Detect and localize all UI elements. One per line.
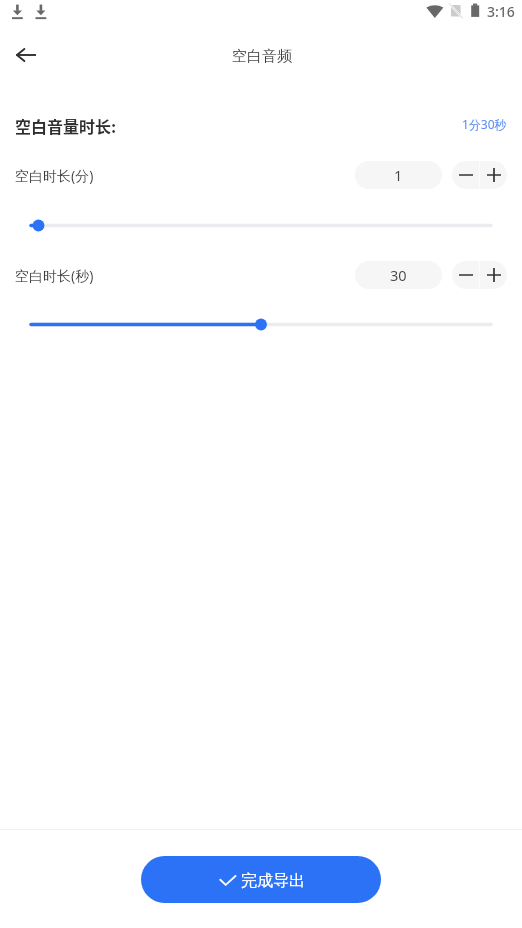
staticText: 空白音量时长: xyxy=(15,114,117,137)
staticText: 1分30秒 xyxy=(462,116,507,132)
staticText: 完成导出 xyxy=(241,871,305,891)
staticText: 30 xyxy=(390,265,407,285)
button[interactable]: Back xyxy=(0,29,52,81)
button[interactable]: 1 xyxy=(355,161,442,189)
button[interactable]: 30 xyxy=(355,261,442,289)
button[interactable]: Increase xyxy=(480,161,507,189)
button[interactable]: Decrease xyxy=(452,261,479,289)
button[interactable]: Decrease xyxy=(452,161,479,189)
button[interactable] xyxy=(31,215,491,236)
button[interactable]: Increase xyxy=(480,261,507,289)
staticText: 空白时长(秒) xyxy=(15,266,94,285)
staticText: 空白时长(分) xyxy=(15,166,94,185)
staticText: 1 xyxy=(394,165,403,185)
button[interactable] xyxy=(31,314,491,335)
staticText: 3:16 xyxy=(487,2,515,21)
button[interactable]: 完成导出 xyxy=(141,856,381,903)
staticText: 空白音频 xyxy=(232,47,292,66)
